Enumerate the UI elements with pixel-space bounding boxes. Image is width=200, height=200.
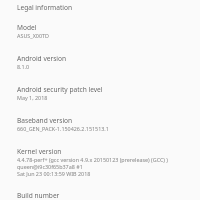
staticText: Build number	[17, 191, 60, 200]
staticText: Model	[17, 23, 37, 32]
staticText: queen@i9c30f65b37a8 #1	[17, 163, 83, 170]
button[interactable]: Legal information	[0, 3, 200, 23]
button[interactable]: Android version	[0, 54, 200, 85]
staticText: 8.1.0	[17, 63, 30, 70]
button[interactable]: Build number	[0, 191, 200, 200]
staticText: ASUS_X00TD	[17, 32, 49, 39]
button[interactable]: Android security patch level	[0, 85, 200, 116]
staticText: Kernel version	[17, 147, 62, 156]
staticText: May 1, 2018	[17, 94, 48, 101]
staticText: Baseband version	[17, 116, 73, 125]
staticText: Legal information	[17, 3, 73, 12]
staticText: Sat Jun 23 00:13:59 WIB 2018	[17, 170, 91, 177]
button[interactable]: Model	[0, 23, 200, 54]
button[interactable]: Baseband version	[0, 116, 200, 147]
button[interactable]: Kernel version	[0, 147, 200, 191]
staticText: 660_GEN_PACK-1.150426.2.151513.1	[17, 125, 109, 132]
staticText: Android security patch level	[17, 85, 103, 94]
staticText: Android version	[17, 54, 67, 63]
staticText: 4.4.78-perf+ (gcc version 4.9.x 20150123…	[17, 156, 168, 163]
